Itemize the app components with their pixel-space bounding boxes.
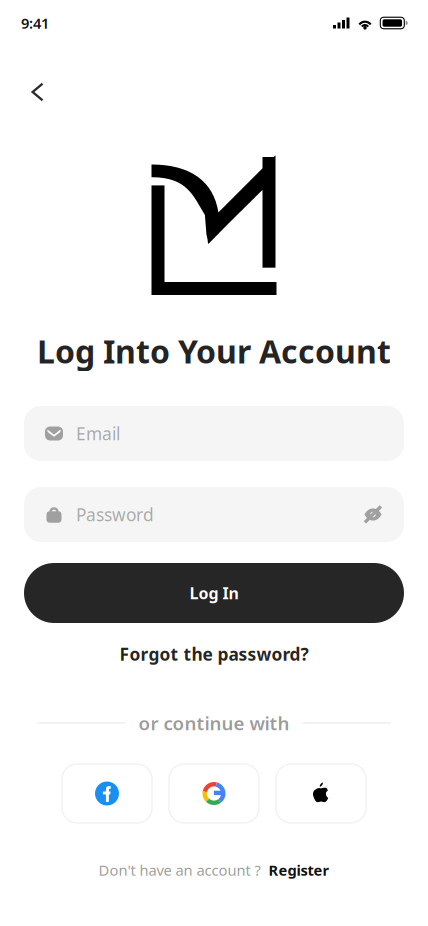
- button[interactable]: Continue with Apple: [276, 764, 366, 823]
- staticText: Forgot the password?: [119, 642, 308, 665]
- staticText: Password: [76, 503, 154, 526]
- staticText: Register: [268, 860, 329, 880]
- button[interactable]: Register: [268, 860, 329, 880]
- button[interactable]: Continue with Facebook: [62, 764, 152, 823]
- staticText: Email: [76, 422, 120, 445]
- staticText: Log Into Your Account: [37, 330, 391, 372]
- staticText: 9:41: [21, 13, 49, 33]
- button[interactable]: Show password: [363, 504, 383, 524]
- button[interactable]: Forgot the password?: [119, 641, 308, 667]
- staticText: Don't have an account ?: [98, 860, 260, 880]
- staticText: or continue with: [138, 711, 289, 735]
- staticText: Log In: [189, 582, 238, 604]
- button[interactable]: Log In: [0, 563, 428, 623]
- button[interactable]: Back: [19, 70, 56, 113]
- button[interactable]: Continue with Google: [169, 764, 259, 823]
